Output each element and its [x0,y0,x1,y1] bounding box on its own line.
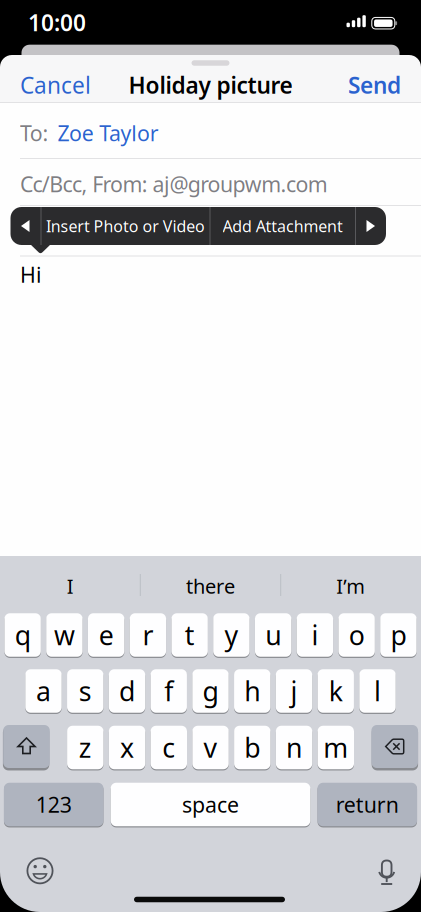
button[interactable]: return [318,783,417,826]
staticText: n [286,730,302,765]
staticText: g [202,673,218,709]
staticText: y [224,617,238,653]
button[interactable]: r [130,613,166,657]
button[interactable]: o [338,613,375,657]
button[interactable]: Emoji [18,848,62,892]
button[interactable]: To: [0,106,421,160]
staticText: p [390,617,406,653]
staticText: f [164,673,173,709]
staticText: return [336,790,399,819]
button[interactable]: h [234,669,270,713]
button[interactable]: e [88,613,124,657]
button[interactable]: Add Attachment [222,204,343,248]
staticText: Zoe Taylor [57,119,159,147]
staticText: v [204,730,218,765]
staticText: Insert Photo or Video [46,215,205,237]
button[interactable]: Dictate [364,849,408,893]
staticText: Holiday picture [128,70,292,100]
button[interactable]: x [109,726,145,769]
button[interactable]: m [318,726,354,769]
button[interactable]: q [4,613,41,657]
staticText: Hi [20,260,42,289]
staticText: z [79,730,92,765]
staticText: o [349,617,365,653]
staticText: x [120,730,134,765]
staticText: there [186,573,235,599]
staticText: u [265,617,281,653]
staticText: Cc/Bcc, From: aj@groupwm.com [20,170,328,198]
staticText: t [185,617,195,653]
button[interactable]: More items [355,207,385,245]
staticText: 10:00 [28,7,86,37]
button[interactable]: s [67,669,103,713]
staticText: s [79,673,92,709]
button[interactable]: c [151,726,187,769]
staticText: I [67,573,74,599]
button[interactable]: Send [348,70,401,100]
staticText: q [15,617,31,653]
button[interactable]: u [255,613,291,657]
button[interactable]: i [297,613,333,657]
button[interactable]: n [276,726,312,769]
staticText: 123 [36,790,72,819]
staticText: e [99,617,114,653]
button[interactable]: p [380,613,417,657]
button[interactable]: I’m [286,564,416,608]
staticText: To: [20,119,48,147]
button[interactable]: f [151,669,187,713]
button[interactable]: a [25,669,62,713]
button[interactable]: there [145,564,275,608]
button[interactable]: g [192,669,229,713]
button[interactable]: Insert Photo or Video [46,204,205,248]
staticText: Send [348,70,401,100]
button[interactable]: Delete [371,725,418,768]
staticText: h [244,673,260,709]
staticText: Cancel [20,70,91,100]
button[interactable]: b [234,726,270,769]
button[interactable]: w [46,613,83,657]
staticText: j [290,673,297,709]
staticText: a [36,673,51,709]
staticText: k [329,673,343,709]
staticText: w [54,617,75,653]
button[interactable]: d [109,669,145,713]
button[interactable]: space [111,783,310,826]
button[interactable]: I [5,564,135,608]
staticText: space [182,790,239,819]
staticText: Add Attachment [222,215,343,237]
button[interactable]: t [171,613,208,657]
button[interactable]: Cancel [20,70,91,100]
staticText: m [323,730,348,765]
staticText: c [162,730,175,765]
button[interactable]: z [67,726,103,769]
button[interactable]: l [359,669,396,713]
button[interactable]: v [192,726,229,769]
button[interactable]: j [276,669,312,713]
staticText: I’m [336,573,365,599]
button[interactable]: k [318,669,354,713]
button[interactable]: 123 [4,783,103,826]
button[interactable]: Shift [3,725,50,768]
staticText: d [119,673,135,709]
staticText: r [142,617,153,653]
staticText: l [374,673,381,709]
button[interactable]: Cc/Bcc, From: aj@groupwm.com [0,161,421,207]
staticText: i [311,617,318,653]
button[interactable]: Previous items [10,207,40,245]
staticText: b [244,730,260,765]
button[interactable]: y [213,613,250,657]
